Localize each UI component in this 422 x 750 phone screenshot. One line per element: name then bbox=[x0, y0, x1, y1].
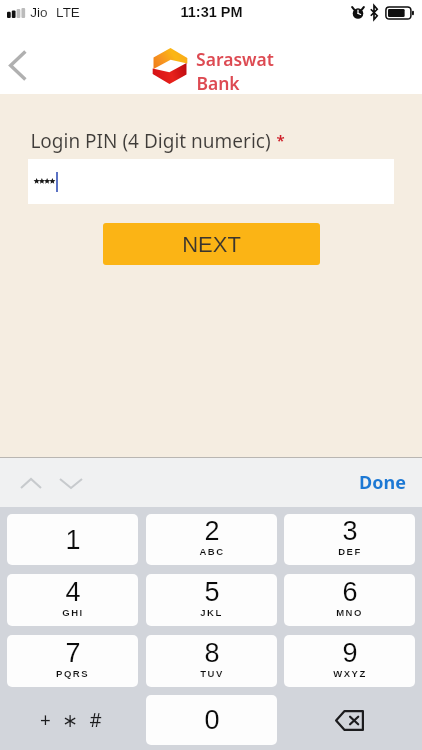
button[interactable]: 8 bbox=[146, 635, 277, 687]
staticText: 3 bbox=[342, 516, 358, 546]
button[interactable]: Back bbox=[0, 37, 38, 93]
staticText: 5 bbox=[204, 577, 220, 607]
staticText: 0 bbox=[204, 705, 220, 735]
staticText: Bank bbox=[196, 71, 240, 95]
button[interactable]: 3 bbox=[284, 514, 415, 565]
staticText: NEXT bbox=[182, 232, 241, 257]
staticText: 2 bbox=[204, 516, 220, 546]
staticText: 7 bbox=[65, 638, 81, 668]
staticText: 4 bbox=[65, 577, 81, 607]
staticText: Done bbox=[359, 470, 406, 495]
staticText: Saraswat bbox=[196, 47, 274, 71]
staticText: * bbox=[276, 130, 285, 150]
button[interactable]: 6 bbox=[284, 574, 415, 626]
staticText: 9 bbox=[342, 638, 358, 668]
button[interactable]: 0 bbox=[146, 695, 277, 745]
button[interactable]: NEXT bbox=[103, 223, 320, 265]
button[interactable]: Backspace bbox=[284, 695, 415, 745]
staticText: GHI bbox=[62, 607, 84, 618]
staticText: Login PIN (4 Digit numeric) bbox=[30, 128, 271, 154]
staticText: Jio bbox=[30, 5, 48, 20]
staticText: 6 bbox=[342, 577, 358, 607]
staticText: 1 bbox=[65, 525, 81, 555]
button[interactable]: 7 bbox=[7, 635, 138, 687]
button[interactable]: Previous field bbox=[9, 464, 53, 502]
staticText: 8 bbox=[204, 638, 220, 668]
button[interactable]: 1 bbox=[7, 514, 138, 565]
button[interactable]: Symbols bbox=[7, 695, 138, 745]
staticText: WXYZ bbox=[333, 668, 367, 679]
staticText: PQRS bbox=[56, 668, 89, 679]
button[interactable]: 9 bbox=[284, 635, 415, 687]
staticText: ABC bbox=[199, 546, 225, 557]
button[interactable]: Done bbox=[351, 464, 414, 501]
staticText: DEF bbox=[338, 546, 362, 557]
staticText: MNO bbox=[336, 607, 363, 618]
button[interactable] bbox=[28, 159, 394, 204]
staticText: + ∗ # bbox=[40, 707, 105, 733]
button[interactable]: Next field bbox=[49, 464, 93, 502]
staticText: TUV bbox=[200, 668, 224, 679]
staticText: LTE bbox=[56, 5, 80, 20]
button[interactable]: 5 bbox=[146, 574, 277, 626]
button[interactable]: 4 bbox=[7, 574, 138, 626]
staticText: 11:31 PM bbox=[180, 4, 243, 20]
button[interactable]: 2 bbox=[146, 514, 277, 565]
staticText: JKL bbox=[200, 607, 223, 618]
